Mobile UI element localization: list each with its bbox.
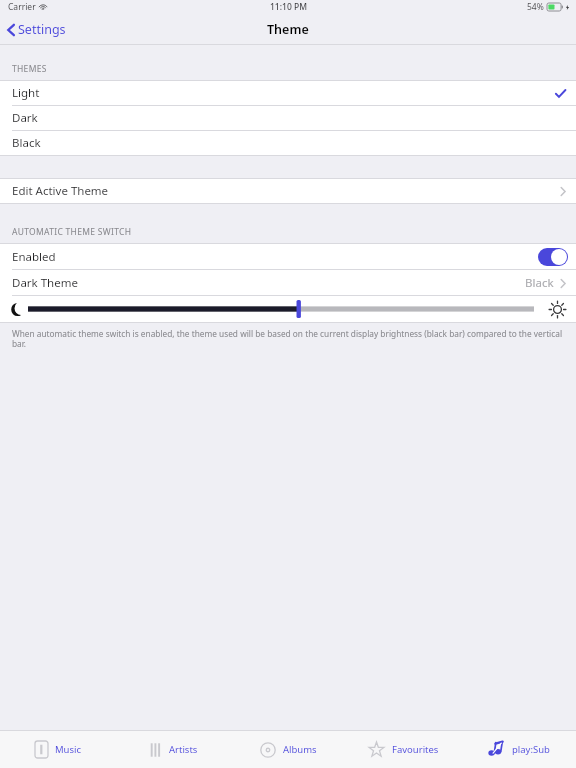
other: Bright [549,301,566,318]
staticText: Carrier [8,1,36,13]
staticText: Favourites [392,743,439,756]
staticText: Settings [18,21,66,38]
staticText: Dark [12,110,38,126]
other: Dark [10,302,25,317]
staticText: Light [12,85,40,101]
button[interactable]: Dark [0,106,576,130]
staticText: Dark Theme [12,275,78,291]
button[interactable]: play:Sub [461,731,576,768]
staticText: Black [12,135,41,151]
staticText: THEMES [12,63,47,75]
button[interactable]: Edit Active Theme [0,179,576,203]
staticText: AUTOMATIC THEME SWITCH [12,226,132,238]
button[interactable]: Light [0,81,576,105]
staticText: Black [525,275,554,291]
button[interactable]: Music [0,731,116,768]
staticText: Edit Active Theme [12,183,109,199]
button[interactable]: Albums [231,731,346,768]
staticText: Theme [267,21,309,38]
staticText: 54% [527,1,544,13]
staticText: Artists [169,743,198,756]
staticText: When automatic theme switch is enabled, … [12,328,564,350]
staticText: 11:10 PM [270,1,307,13]
staticText: Enabled [12,249,56,265]
button[interactable]: Artists [116,731,231,768]
button[interactable]: Black [0,131,576,155]
button[interactable]: Enabled toggle [538,248,568,266]
button[interactable]: Favourites [346,731,461,768]
button[interactable]: Settings [0,17,76,42]
staticText: Music [55,743,82,756]
staticText: play:Sub [512,743,550,756]
button[interactable]: Enabled [0,244,576,269]
button[interactable]: Dark Theme [0,270,576,295]
staticText: Albums [283,743,317,756]
